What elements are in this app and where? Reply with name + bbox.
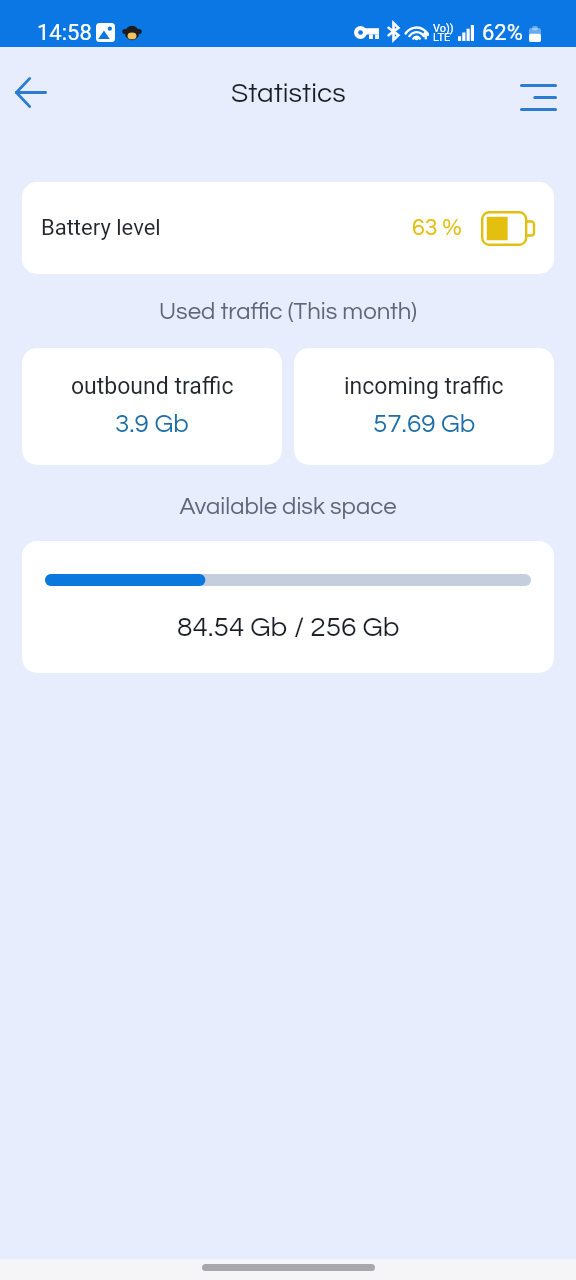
staticText: 3.9 Gb (115, 411, 189, 438)
staticText: Available disk space (0, 494, 576, 519)
staticText: 14:58 (37, 20, 92, 46)
staticText: LTE (433, 31, 451, 44)
button[interactable]: Battery level (22, 182, 554, 274)
staticText: Vo)) (433, 22, 454, 35)
staticText: outbound traffic (71, 373, 234, 400)
staticText: Statistics (231, 79, 346, 108)
staticText: incoming traffic (344, 373, 504, 400)
button[interactable]: incoming traffic (294, 348, 554, 465)
staticText: Used traffic (This month) (0, 299, 576, 324)
staticText: 63 % (412, 216, 462, 240)
staticText: 62% (482, 20, 523, 46)
staticText: 84.54 Gb / 256 Gb (177, 613, 400, 642)
staticText: Battery level (41, 215, 161, 241)
button[interactable]: 84.54 Gb / 256 Gb (22, 541, 554, 673)
button[interactable]: Back (3, 64, 59, 120)
button[interactable]: outbound traffic (22, 348, 282, 465)
staticText: 57.69 Gb (373, 411, 476, 438)
button[interactable]: Menu (510, 69, 566, 125)
